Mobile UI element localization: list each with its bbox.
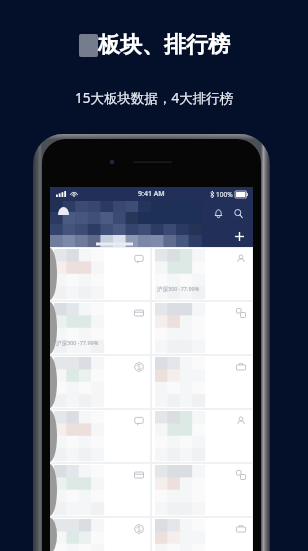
button[interactable]	[51, 410, 150, 462]
button[interactable]	[51, 464, 150, 516]
button[interactable]: Search	[228, 203, 248, 223]
button[interactable]	[51, 518, 150, 551]
button[interactable]	[152, 410, 252, 462]
button[interactable]	[152, 302, 252, 354]
button[interactable]: Add	[231, 228, 247, 244]
button[interactable]	[152, 356, 252, 408]
staticText: 板块、排行榜	[98, 31, 230, 59]
button[interactable]	[152, 518, 252, 551]
button[interactable]	[152, 464, 252, 516]
staticText: 9:41 AM	[138, 189, 165, 199]
button[interactable]: Notifications	[208, 203, 228, 223]
button[interactable]: 沪深300 -77.99%	[51, 302, 150, 354]
staticText: 沪深300 -77.99%	[157, 285, 200, 293]
staticText: 沪深300 -77.99%	[56, 339, 99, 347]
button[interactable]	[51, 248, 150, 300]
staticText: 15大板块数据，4大排行榜	[75, 89, 234, 107]
staticText: 100%	[216, 190, 233, 199]
button[interactable]: 沪深300 -77.99%	[152, 248, 252, 300]
button[interactable]	[51, 356, 150, 408]
